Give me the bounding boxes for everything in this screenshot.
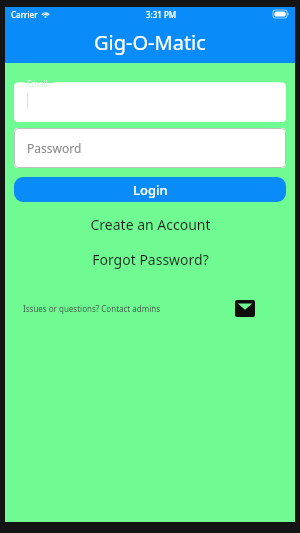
button[interactable]: Create an Account bbox=[5, 215, 295, 234]
staticText: Forgot Password? bbox=[92, 250, 209, 269]
button[interactable]: Forgot Password? bbox=[5, 250, 295, 269]
staticText: Carrier bbox=[11, 9, 38, 20]
button[interactable]: Email bbox=[14, 78, 286, 122]
staticText: Email bbox=[27, 78, 48, 89]
button[interactable]: Password bbox=[14, 128, 286, 168]
staticText: Password bbox=[27, 140, 82, 156]
button[interactable]: Email the admins bbox=[235, 300, 255, 317]
button[interactable]: Login bbox=[14, 177, 286, 202]
staticText: Create an Account bbox=[90, 215, 211, 234]
staticText: Login bbox=[133, 181, 168, 199]
staticText: Gig-O-Matic bbox=[94, 29, 206, 56]
staticText: 3:31 PM bbox=[146, 9, 177, 20]
staticText: Issues or questions? Contact admins bbox=[23, 303, 161, 314]
